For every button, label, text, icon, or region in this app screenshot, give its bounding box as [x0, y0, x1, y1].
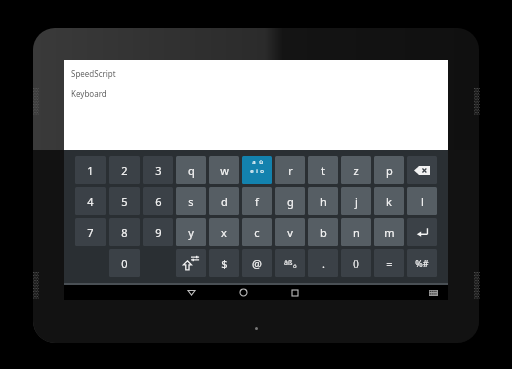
button[interactable]: 6 [143, 187, 173, 215]
staticText: i [256, 167, 258, 175]
staticText: $ [221, 256, 228, 271]
button[interactable]: h [308, 187, 338, 215]
button[interactable]: q [176, 156, 206, 184]
button[interactable]: 3 [143, 156, 173, 184]
button[interactable]: Recent apps [280, 285, 310, 300]
button[interactable]: m [374, 218, 404, 246]
staticText: 7 [87, 225, 94, 240]
staticText: () [353, 257, 359, 269]
button[interactable]: 7 [75, 218, 106, 246]
button[interactable]: j [341, 187, 371, 215]
button[interactable]: f [242, 187, 272, 215]
staticText: äß [284, 258, 293, 268]
staticText: r [288, 163, 293, 178]
button[interactable]: v [275, 218, 305, 246]
staticText: s [188, 194, 194, 209]
staticText: p [386, 163, 393, 178]
button[interactable]: p [374, 156, 404, 184]
button[interactable]: a [242, 156, 272, 184]
button[interactable]: 9 [143, 218, 173, 246]
staticText: 8 [121, 225, 128, 240]
staticText: n [353, 225, 360, 240]
staticText: q [188, 163, 195, 178]
button[interactable]: Home [228, 285, 258, 300]
staticText: z [353, 163, 359, 178]
button[interactable]: 8 [109, 218, 140, 246]
button[interactable]: k [374, 187, 404, 215]
button[interactable]: y [176, 218, 206, 246]
button[interactable]: %# [407, 249, 437, 277]
button[interactable]: d [209, 187, 239, 215]
button[interactable]: Back [176, 285, 206, 300]
button[interactable]: 4 [75, 187, 106, 215]
button[interactable]: 5 [109, 187, 140, 215]
button[interactable]: @ [242, 249, 272, 277]
button[interactable]: 1 [75, 156, 106, 184]
staticText: c [254, 225, 260, 240]
button[interactable]: Shift and settings [176, 249, 206, 277]
staticText: v [287, 225, 293, 240]
button[interactable]: g [275, 187, 305, 215]
button[interactable]: c [242, 218, 272, 246]
staticText: h [320, 194, 327, 209]
button[interactable]: 2 [109, 156, 140, 184]
staticText: 5 [121, 194, 128, 209]
button[interactable]: () [341, 249, 371, 277]
staticText: SpeedScript [71, 68, 116, 79]
staticText: 0 [121, 256, 128, 271]
staticText: %# [415, 257, 429, 269]
staticText: 6 [155, 194, 162, 209]
staticText: f [255, 194, 259, 209]
button[interactable]: Enter [407, 218, 437, 246]
staticText: b [320, 225, 327, 240]
button[interactable]: b [308, 218, 338, 246]
staticText: 9 [155, 225, 162, 240]
button[interactable]: Switch keyboard [422, 285, 444, 300]
button[interactable]: r [275, 156, 305, 184]
staticText: 1 [87, 163, 94, 178]
button[interactable]: . [308, 249, 338, 277]
staticText: y [188, 225, 194, 240]
button[interactable]: = [374, 249, 404, 277]
staticText: ö [293, 262, 297, 270]
staticText: w [220, 163, 229, 178]
staticText: ü [259, 158, 263, 166]
staticText: e [250, 167, 254, 175]
button[interactable]: l [407, 187, 437, 215]
staticText: = [386, 256, 393, 271]
staticText: d [221, 194, 228, 209]
button[interactable]: x [209, 218, 239, 246]
button[interactable]: w [209, 156, 239, 184]
button[interactable]: n [341, 218, 371, 246]
staticText: x [221, 225, 227, 240]
button[interactable]: 0 [109, 249, 140, 277]
staticText: l [421, 194, 424, 209]
staticText: j [355, 194, 358, 209]
staticText: Keyboard [71, 88, 107, 99]
button[interactable]: $ [209, 249, 239, 277]
staticText: . [322, 256, 325, 271]
staticText: m [384, 225, 395, 240]
button[interactable]: s [176, 187, 206, 215]
staticText: t [321, 163, 325, 178]
button[interactable]: Backspace [407, 156, 437, 184]
staticText: 2 [121, 163, 128, 178]
staticText: 3 [155, 163, 162, 178]
staticText: g [287, 194, 294, 209]
staticText: @ [252, 256, 262, 271]
button[interactable]: t [308, 156, 338, 184]
button[interactable]: z [341, 156, 371, 184]
staticText: a [252, 158, 256, 166]
button[interactable]: Accented characters [275, 249, 305, 277]
staticText: 4 [87, 194, 94, 209]
staticText: k [386, 194, 392, 209]
staticText: o [260, 167, 264, 175]
